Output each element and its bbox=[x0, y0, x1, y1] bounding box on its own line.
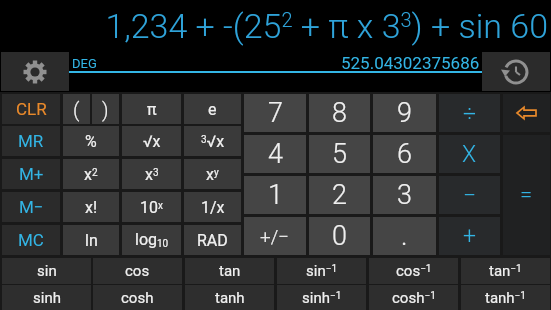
staticText: DEG bbox=[72, 56, 97, 71]
button[interactable]: 1 bbox=[244, 176, 306, 214]
button[interactable]: − bbox=[439, 176, 500, 214]
staticText: x! bbox=[85, 198, 98, 217]
button[interactable]: cos bbox=[93, 258, 182, 284]
button[interactable]: . bbox=[373, 217, 436, 255]
button[interactable]: ( bbox=[63, 94, 90, 124]
button[interactable]: √x bbox=[122, 126, 181, 156]
button[interactable]: x! bbox=[63, 192, 119, 222]
staticText: √x bbox=[143, 132, 161, 151]
button[interactable]: 5 bbox=[309, 135, 370, 173]
button[interactable]: 1/x bbox=[184, 192, 241, 222]
staticText: 1,234 + -(252 + π x 33) + sin 60 bbox=[105, 6, 548, 46]
button[interactable]: tan bbox=[185, 258, 274, 284]
staticText: 525.04302375686 bbox=[341, 53, 480, 73]
button[interactable] bbox=[1, 52, 69, 91]
button[interactable]: x2 bbox=[63, 159, 119, 189]
staticText: cos−1 bbox=[396, 262, 432, 280]
button[interactable]: cosh bbox=[93, 285, 182, 310]
button[interactable]: tanh−1 bbox=[461, 285, 550, 310]
button[interactable] bbox=[503, 94, 550, 132]
button[interactable]: 6 bbox=[373, 135, 436, 173]
staticText: 4 bbox=[268, 138, 283, 170]
button[interactable]: 0 bbox=[309, 217, 370, 255]
staticText: 3 bbox=[397, 179, 412, 211]
button[interactable]: 4 bbox=[244, 135, 306, 173]
button[interactable]: log10 bbox=[122, 225, 181, 255]
button[interactable]: xy bbox=[184, 159, 241, 189]
staticText: 10x bbox=[140, 198, 163, 217]
button[interactable]: 2 bbox=[309, 176, 370, 214]
button[interactable]: tan−1 bbox=[461, 258, 550, 284]
button[interactable]: 10x bbox=[122, 192, 181, 222]
staticText: cosh bbox=[121, 289, 154, 307]
staticText: ln bbox=[85, 231, 98, 250]
button[interactable]: 3 bbox=[373, 176, 436, 214]
button[interactable]: 7 bbox=[244, 94, 306, 132]
staticText: log10 bbox=[135, 230, 169, 250]
button[interactable]: sin bbox=[2, 258, 91, 284]
staticText: 1/x bbox=[201, 198, 225, 217]
button[interactable]: MR bbox=[2, 126, 60, 156]
button[interactable]: RAD bbox=[184, 225, 241, 255]
staticText: M− bbox=[19, 197, 44, 217]
staticText: xy bbox=[206, 165, 219, 184]
button[interactable]: sinh bbox=[2, 285, 91, 310]
button[interactable]: x3 bbox=[122, 159, 181, 189]
staticText: ( bbox=[73, 98, 80, 121]
staticText: cosh−1 bbox=[392, 289, 436, 307]
staticText: x3 bbox=[145, 165, 159, 184]
button[interactable]: M+ bbox=[2, 159, 60, 189]
staticText: π bbox=[147, 100, 157, 119]
staticText: MR bbox=[18, 131, 44, 151]
staticText: 0 bbox=[332, 220, 347, 252]
staticText: . bbox=[401, 220, 408, 252]
staticText: CLR bbox=[16, 99, 47, 119]
button[interactable]: 9 bbox=[373, 94, 436, 132]
button[interactable]: +/− bbox=[244, 217, 306, 255]
button[interactable] bbox=[482, 52, 550, 91]
staticText: − bbox=[463, 182, 477, 209]
staticText: +/− bbox=[260, 225, 290, 247]
staticText: tanh bbox=[215, 289, 245, 307]
button[interactable]: CLR bbox=[2, 94, 60, 124]
staticText: 6 bbox=[397, 138, 412, 170]
staticText: 1 bbox=[268, 179, 283, 211]
button[interactable]: e bbox=[184, 94, 241, 124]
button[interactable]: + bbox=[439, 217, 500, 255]
staticText: X bbox=[462, 141, 477, 168]
button[interactable]: sinh−1 bbox=[277, 285, 366, 310]
staticText: sinh bbox=[33, 289, 61, 307]
staticText: MC bbox=[18, 230, 44, 250]
button[interactable]: M− bbox=[2, 192, 60, 222]
button[interactable]: tanh bbox=[185, 285, 274, 310]
button[interactable]: π bbox=[122, 94, 181, 124]
staticText: 5 bbox=[332, 138, 347, 170]
staticText: 9 bbox=[397, 97, 412, 129]
staticText: sin bbox=[37, 262, 57, 280]
button[interactable]: ÷ bbox=[439, 94, 500, 132]
button[interactable]: X bbox=[439, 135, 500, 173]
staticText: sinh−1 bbox=[302, 289, 342, 307]
button[interactable]: DEG bbox=[69, 52, 482, 91]
staticText: % bbox=[85, 132, 97, 151]
button[interactable]: 8 bbox=[309, 94, 370, 132]
staticText: 7 bbox=[268, 97, 283, 129]
staticText: 2 bbox=[332, 179, 347, 211]
staticText: x2 bbox=[84, 165, 98, 184]
button[interactable]: ln bbox=[63, 225, 119, 255]
staticText: = bbox=[520, 182, 533, 208]
button[interactable]: cosh−1 bbox=[369, 285, 458, 310]
staticText: tanh−1 bbox=[485, 289, 526, 307]
staticText: tan−1 bbox=[489, 262, 522, 280]
button[interactable]: = bbox=[503, 135, 550, 255]
button[interactable]: 3√x bbox=[184, 126, 241, 156]
button[interactable]: ) bbox=[92, 94, 119, 124]
staticText: cos bbox=[125, 262, 150, 280]
staticText: + bbox=[463, 223, 476, 250]
button[interactable]: % bbox=[63, 126, 119, 156]
button[interactable]: sin−1 bbox=[277, 258, 366, 284]
button[interactable]: cos−1 bbox=[369, 258, 458, 284]
staticText: sin−1 bbox=[306, 262, 338, 280]
button[interactable]: MC bbox=[2, 225, 60, 255]
staticText: 8 bbox=[332, 97, 347, 129]
